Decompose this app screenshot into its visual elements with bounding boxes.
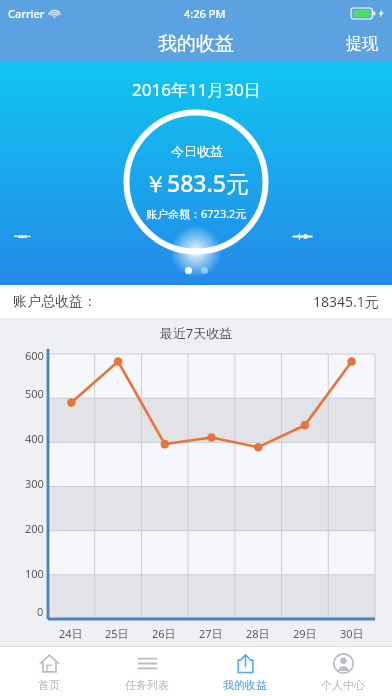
staticText: ￥583.5元 [144,167,249,198]
staticText: 账户余额：6723.2元 [146,206,247,221]
button[interactable]: 排行榜 [8,230,88,243]
staticText: 4:26 PM [184,6,226,21]
staticText: 400 [25,431,44,446]
button[interactable]: 首页 [0,647,98,696]
staticText: 25日 [105,626,129,641]
button[interactable]: 我的收益 [196,647,294,696]
button[interactable]: 邀请好友 [287,230,384,243]
staticText: 任务列表 [125,678,169,692]
staticText: 0 [37,604,44,619]
staticText: 24日 [59,626,83,641]
staticText: 200 [25,521,44,536]
staticText: 2016年11月30日 [132,78,261,101]
staticText: 个人中心 [321,678,365,692]
staticText: Carrier [8,6,45,21]
button[interactable]: 提现 [332,26,392,62]
staticText: 27日 [199,626,223,641]
button[interactable]: 个人中心 [294,647,392,696]
staticText: 提现 [346,34,378,54]
staticText: 18345.1元 [313,292,379,311]
staticText: 我的收益 [158,32,234,56]
staticText: 600 [25,348,44,363]
staticText: 首页 [38,678,60,692]
staticText: 最近7天收益 [0,324,392,342]
staticText: 26日 [152,626,176,641]
staticText: 100 [25,566,44,581]
staticText: 30日 [340,626,364,641]
button[interactable]: 账户总收益： [0,285,392,318]
staticText: 500 [25,386,44,401]
staticText: 29日 [293,626,317,641]
button[interactable]: 任务列表 [98,647,196,696]
staticText: 我的收益 [223,678,267,692]
staticText: 账户总收益： [13,293,97,311]
staticText: 300 [25,476,44,491]
staticText: 28日 [246,626,270,641]
staticText: 今日收益 [171,143,223,159]
